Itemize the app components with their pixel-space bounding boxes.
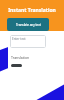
staticText: Enter text (12, 37, 26, 41)
staticText: Instant Translation (8, 7, 56, 14)
button[interactable]: Enter text (10, 35, 46, 48)
button[interactable]: Translate any text (7, 18, 49, 31)
staticText: Translation (11, 55, 30, 60)
staticText: Translate any text (16, 23, 41, 27)
